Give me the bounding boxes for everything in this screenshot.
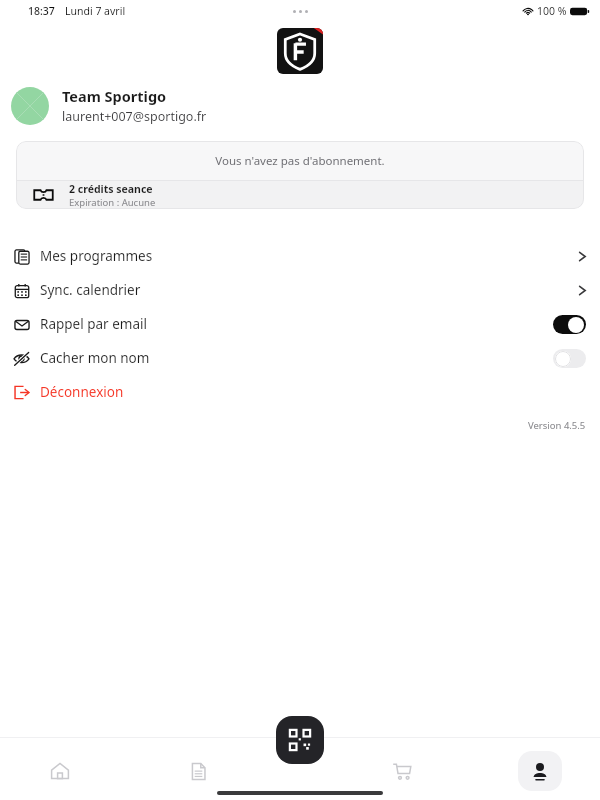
button[interactable]: Scanner un QR code: [276, 716, 324, 764]
button[interactable]: Team Sportigo: [11, 86, 600, 125]
button[interactable]: Désactivé: [553, 349, 586, 368]
staticText: 2 crédits seance: [69, 182, 153, 196]
button[interactable]: Rappel par email: [0, 307, 600, 341]
staticText: Lundi 7 avril: [65, 4, 126, 18]
button[interactable]: Cacher mon nom: [0, 341, 600, 375]
button[interactable]: Accueil: [0, 742, 120, 800]
staticText: Team Sportigo: [62, 86, 167, 106]
staticText: Rappel par email: [40, 315, 147, 333]
button[interactable]: Déconnexion: [0, 375, 600, 409]
staticText: Vous n'avez pas d'abonnement.: [215, 153, 385, 169]
staticText: Expiration : Aucune: [69, 196, 156, 209]
button[interactable]: Sportigo logo: [277, 28, 323, 74]
staticText: Cacher mon nom: [40, 349, 150, 367]
staticText: Version 4.5.5: [528, 419, 586, 432]
staticText: Sync. calendrier: [40, 281, 141, 299]
staticText: 18:37: [28, 4, 55, 18]
button[interactable]: Activé: [553, 315, 586, 334]
button[interactable]: Vous n'avez pas d'abonnement.: [16, 141, 584, 209]
staticText: laurent+007@sportigo.fr: [62, 108, 207, 125]
button[interactable]: Mes programmes: [0, 239, 600, 273]
staticText: Mes programmes: [40, 247, 153, 265]
button[interactable]: Documents: [138, 742, 258, 800]
staticText: Déconnexion: [40, 383, 124, 401]
button[interactable]: Sync. calendrier: [0, 273, 600, 307]
button[interactable]: Panier: [342, 742, 462, 800]
button[interactable]: Profil: [480, 742, 600, 800]
staticText: 100 %: [537, 4, 567, 18]
